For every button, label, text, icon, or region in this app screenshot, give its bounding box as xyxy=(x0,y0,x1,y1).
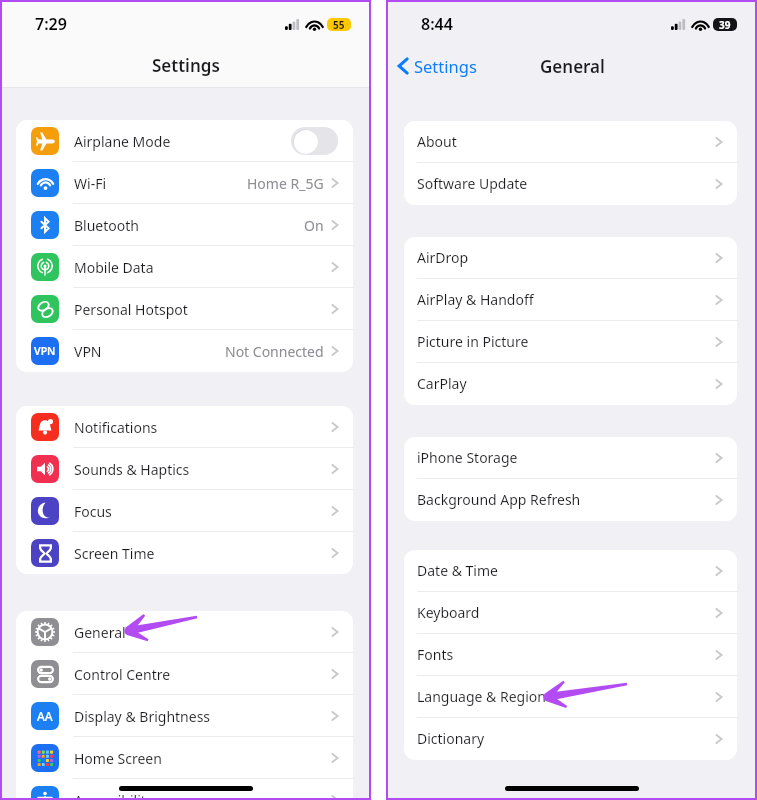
button[interactable]: Focus xyxy=(16,490,353,532)
button[interactable]: Airplane Mode xyxy=(16,120,353,162)
button[interactable]: Background App Refresh xyxy=(404,479,737,521)
button[interactable]: Software Update xyxy=(404,163,737,205)
staticText: General xyxy=(74,623,331,642)
button[interactable]: Notifications xyxy=(16,406,353,448)
staticText: General xyxy=(540,55,605,78)
button[interactable]: Mobile Data xyxy=(16,246,353,288)
staticText: Wi-Fi xyxy=(74,174,247,193)
staticText: VPN xyxy=(74,342,225,361)
button[interactable]: Fonts xyxy=(404,634,737,676)
staticText: Home Screen xyxy=(74,749,331,768)
staticText: Home R_5G xyxy=(247,174,324,193)
button[interactable]: Airplane Mode toggle xyxy=(291,127,338,155)
staticText: Settings xyxy=(414,55,477,77)
staticText: Personal Hotspot xyxy=(74,300,331,319)
staticText: About xyxy=(417,132,715,151)
button[interactable]: Personal Hotspot xyxy=(16,288,353,330)
button[interactable]: General xyxy=(16,611,353,653)
staticText: On xyxy=(304,216,324,235)
button[interactable]: Date & Time xyxy=(404,550,737,592)
staticText: 8:44 xyxy=(421,13,453,35)
staticText: Keyboard xyxy=(417,603,715,622)
button[interactable]: Bluetooth xyxy=(16,204,353,246)
staticText: Screen Time xyxy=(74,544,331,563)
staticText: Mobile Data xyxy=(74,258,331,277)
staticText: Sounds & Haptics xyxy=(74,460,331,479)
staticText: Display & Brightness xyxy=(74,707,331,726)
staticText: Bluetooth xyxy=(74,216,304,235)
staticText: 39 xyxy=(719,18,731,31)
button[interactable]: Accessibility xyxy=(16,779,353,800)
staticText: Accessibility xyxy=(74,791,331,800)
staticText: Control Centre xyxy=(74,665,331,684)
button[interactable]: Wi-Fi xyxy=(16,162,353,204)
button[interactable]: iPhone Storage xyxy=(404,437,737,479)
button[interactable]: Picture in Picture xyxy=(404,321,737,363)
staticText: Focus xyxy=(74,502,331,521)
staticText: Software Update xyxy=(417,174,715,193)
staticText: Background App Refresh xyxy=(417,490,715,509)
staticText: VPN xyxy=(34,344,56,358)
button[interactable]: Sounds & Haptics xyxy=(16,448,353,490)
button[interactable]: Screen Time xyxy=(16,532,353,574)
staticText: Picture in Picture xyxy=(417,332,715,351)
button[interactable]: CarPlay xyxy=(404,363,737,405)
staticText: Airplane Mode xyxy=(74,132,291,151)
staticText: Not Connected xyxy=(225,342,324,361)
staticText: AirPlay & Handoff xyxy=(417,290,715,309)
button[interactable]: Home Screen xyxy=(16,737,353,779)
button[interactable]: Keyboard xyxy=(404,592,737,634)
button[interactable]: Dictionary xyxy=(404,718,737,760)
staticText: AA xyxy=(37,708,53,724)
button[interactable]: AA xyxy=(16,695,353,737)
button[interactable]: About xyxy=(404,121,737,163)
button[interactable]: Language & Region xyxy=(404,676,737,718)
button[interactable]: Control Centre xyxy=(16,653,353,695)
staticText: 7:29 xyxy=(35,13,67,35)
staticText: Language & Region xyxy=(417,687,715,706)
staticText: Fonts xyxy=(417,645,715,664)
button[interactable]: AirDrop xyxy=(404,237,737,279)
staticText: Date & Time xyxy=(417,561,715,580)
staticText: Settings xyxy=(152,54,220,77)
button[interactable]: VPN xyxy=(16,330,353,372)
staticText: 55 xyxy=(333,18,345,31)
staticText: Dictionary xyxy=(417,729,715,748)
staticText: AirDrop xyxy=(417,248,715,267)
button[interactable]: AirPlay & Handoff xyxy=(404,279,737,321)
button[interactable]: Settings xyxy=(396,55,477,77)
staticText: Notifications xyxy=(74,418,331,437)
staticText: CarPlay xyxy=(417,374,715,393)
staticText: iPhone Storage xyxy=(417,448,715,467)
